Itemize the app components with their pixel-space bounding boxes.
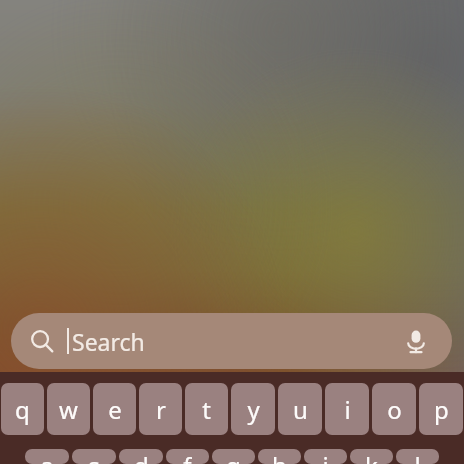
button[interactable]: e [93, 383, 136, 435]
staticText: y [247, 393, 260, 426]
button[interactable]: t [185, 383, 228, 435]
button[interactable]: h [258, 449, 301, 464]
button[interactable]: d [119, 449, 163, 464]
button[interactable]: y [231, 383, 275, 435]
staticText: l [414, 449, 421, 464]
staticText: i [344, 393, 351, 426]
button[interactable]: o [372, 383, 416, 435]
staticText: q [15, 393, 30, 426]
button[interactable]: p [419, 383, 463, 435]
staticText: r [156, 393, 166, 426]
staticText: d [134, 449, 149, 464]
button[interactable]: s [72, 449, 116, 464]
staticText: w [59, 393, 78, 426]
staticText: s [88, 449, 100, 464]
button[interactable]: r [139, 383, 182, 435]
staticText: t [202, 393, 211, 426]
button[interactable]: Search [11, 313, 452, 369]
button[interactable]: j [304, 449, 347, 464]
staticText: f [183, 449, 192, 464]
staticText: e [108, 393, 122, 426]
button[interactable]: g [212, 449, 255, 464]
button[interactable]: w [47, 383, 90, 435]
button[interactable]: i [325, 383, 369, 435]
button[interactable]: a [25, 449, 69, 464]
staticText: o [387, 393, 402, 426]
staticText: Search [72, 326, 145, 357]
button[interactable]: u [278, 383, 322, 435]
button[interactable]: q [1, 383, 44, 435]
staticText: a [40, 449, 54, 464]
button[interactable]: Voice search [399, 324, 433, 358]
staticText: j [322, 449, 329, 464]
staticText: p [434, 393, 449, 426]
staticText: h [272, 449, 287, 464]
button[interactable]: l [396, 449, 439, 464]
staticText: k [365, 449, 378, 464]
staticText: g [226, 449, 241, 464]
button[interactable]: k [350, 449, 393, 464]
staticText: u [293, 393, 308, 426]
button[interactable]: f [166, 449, 209, 464]
